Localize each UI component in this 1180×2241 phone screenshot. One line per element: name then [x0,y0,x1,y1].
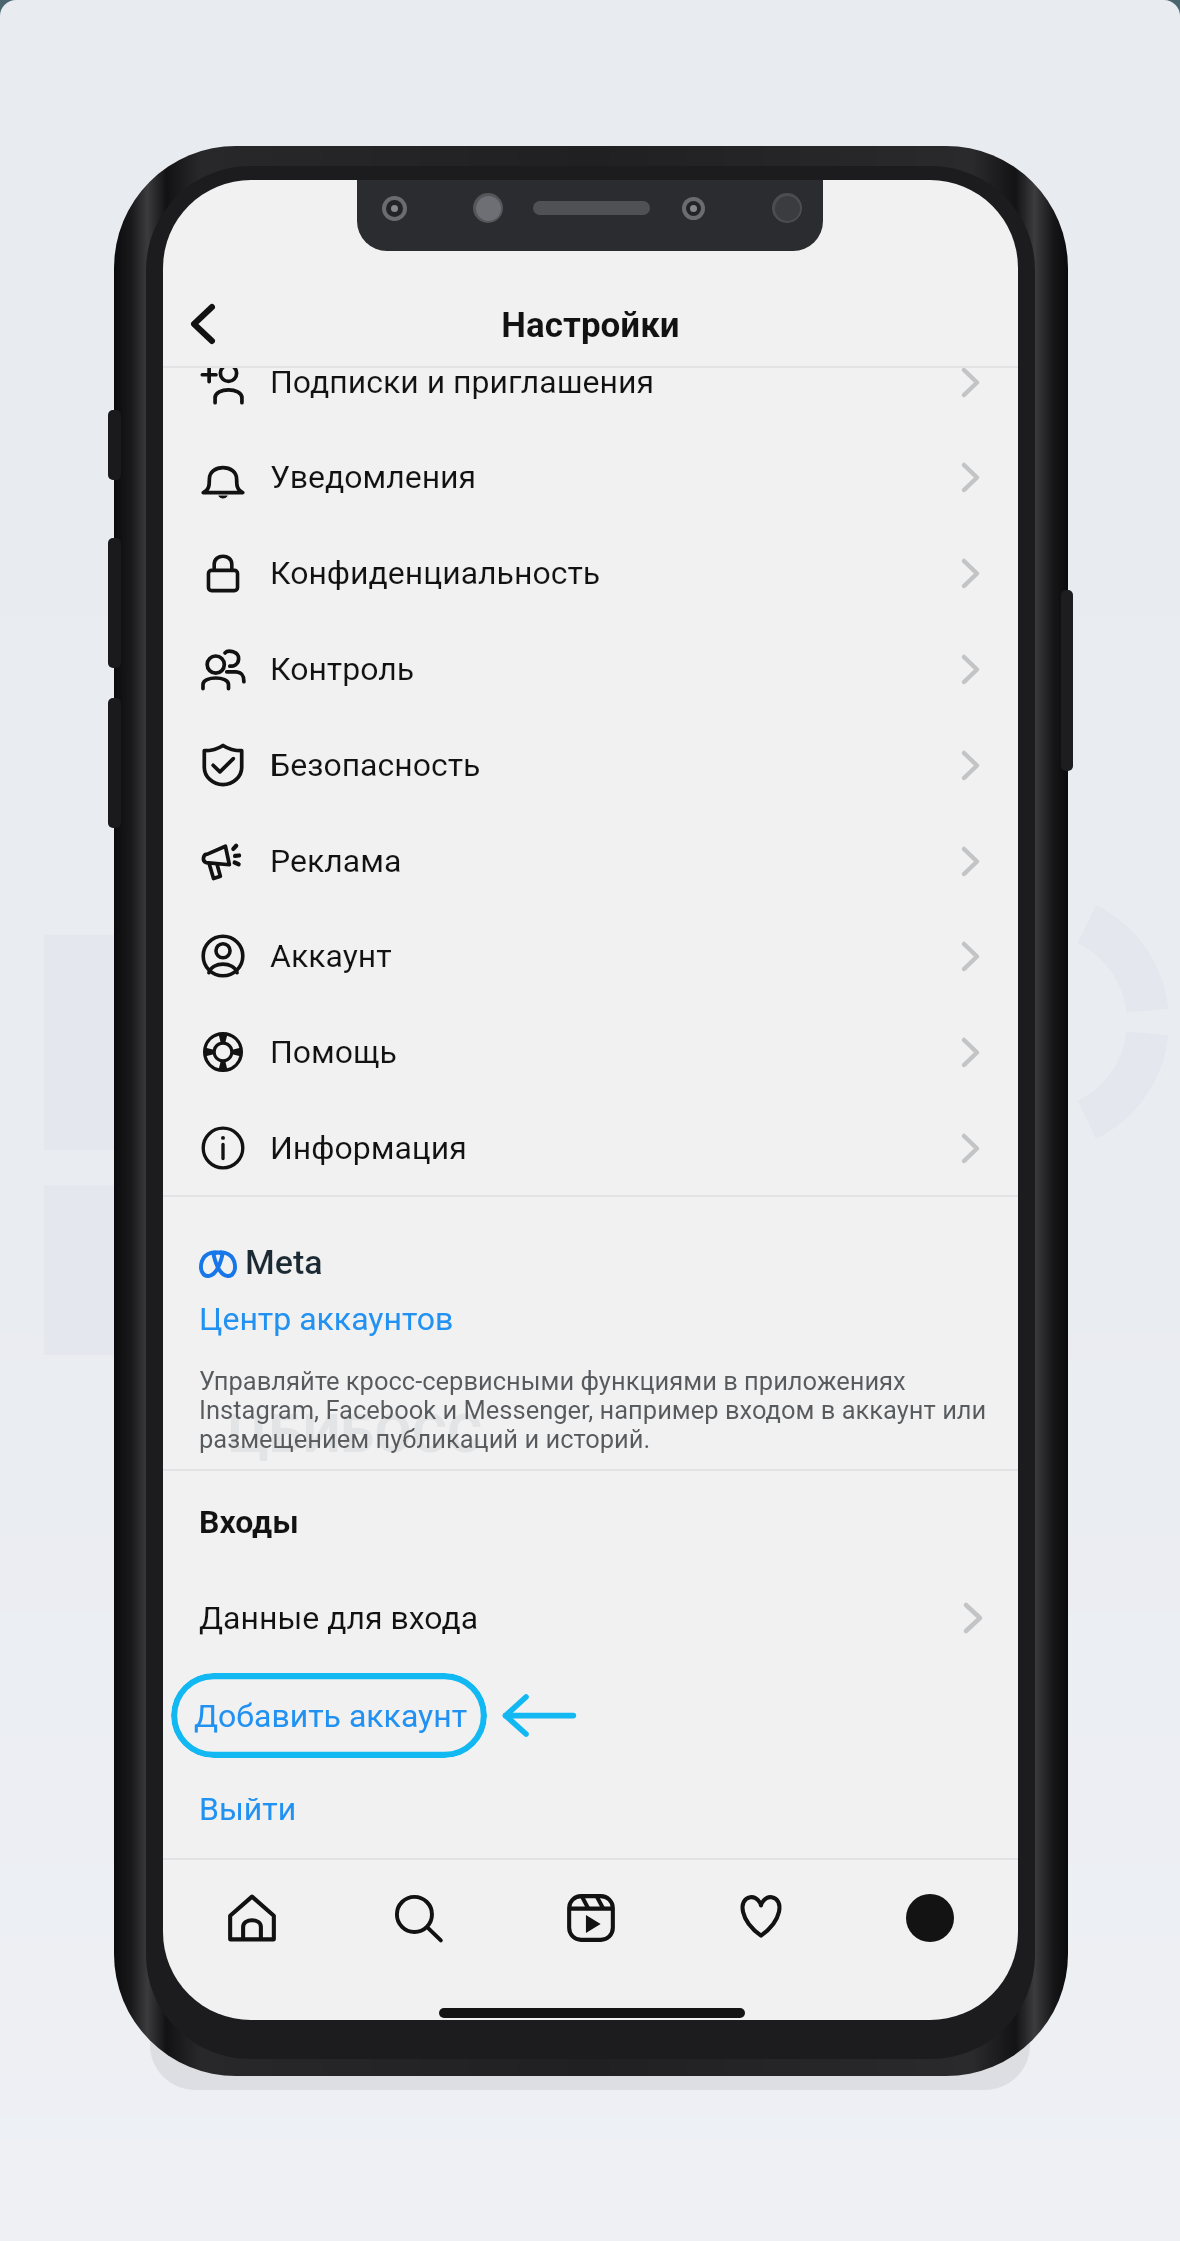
staticText: Управляйте кросс-сервисными функциями в … [199,1366,987,1454]
button[interactable]: Профиль [884,1872,976,1964]
staticText: Добавить аккаунт [194,1697,468,1735]
button[interactable]: Добавить аккаунт [171,1673,487,1758]
staticText: Выйти [199,1790,297,1828]
button[interactable]: Главная [206,1872,298,1964]
button[interactable]: Помощь [163,1004,1018,1100]
staticText: Помощь [270,1033,397,1071]
staticText: Данные для входа [199,1599,479,1637]
button[interactable]: Безопасность [163,717,1018,813]
button[interactable]: Данные для входа [163,1570,1018,1666]
button[interactable]: Назад [169,287,241,361]
staticText: Безопасность [270,746,481,784]
button[interactable]: Аккаунт [163,908,1018,1004]
staticText: Центр аккаунтов [199,1300,454,1338]
staticText: ЦБИБОСС [228,1402,483,1465]
staticText: Контроль [270,650,415,688]
button[interactable]: Поиск [373,1872,465,1964]
staticText: Настройки [163,305,1018,346]
staticText: Конфиденциальность [270,554,601,592]
button[interactable]: Выйти [163,1765,1018,1853]
button[interactable]: Уведомления [163,429,1018,525]
staticText: Реклама [270,842,402,880]
button[interactable]: Нравится [715,1872,807,1964]
staticText: Meta [245,1242,323,1282]
button[interactable]: Информация [163,1100,1018,1196]
staticText: Входы [199,1503,299,1541]
button[interactable]: Контроль [163,621,1018,717]
staticText: Подписки и приглашения [270,368,655,401]
button[interactable]: Подписки и приглашения [163,368,1018,430]
button[interactable]: Реклама [163,813,1018,909]
button[interactable]: Центр аккаунтов [199,1300,454,1338]
button[interactable]: Reels [545,1872,637,1964]
button[interactable]: Конфиденциальность [163,525,1018,621]
staticText: Уведомления [270,458,477,496]
staticText: Аккаунт [270,937,392,975]
staticText: Информация [270,1129,467,1167]
